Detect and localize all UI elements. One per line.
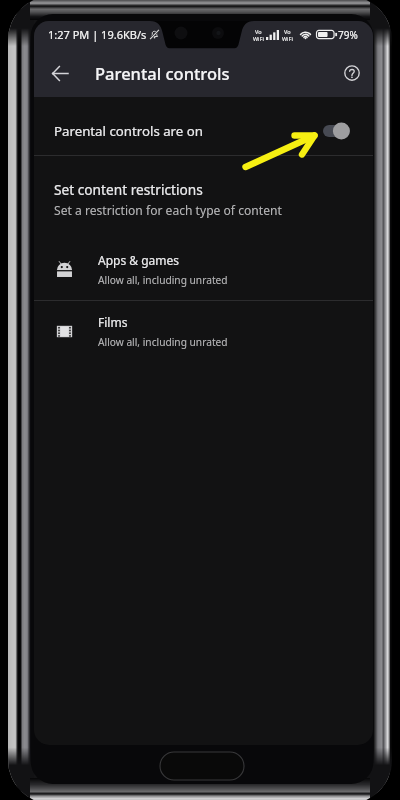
button[interactable]: Parental controls are on bbox=[34, 97, 373, 155]
staticText: Allow all, including unrated bbox=[98, 335, 228, 349]
button[interactable]: Back bbox=[40, 53, 80, 93]
staticText: Vo bbox=[284, 28, 291, 35]
staticText: Parental controls bbox=[95, 62, 230, 84]
staticText: Allow all, including unrated bbox=[98, 273, 228, 287]
staticText: WiFi bbox=[253, 35, 264, 42]
staticText: Films bbox=[98, 314, 128, 330]
button[interactable]: Help bbox=[335, 56, 369, 90]
button[interactable]: Films bbox=[34, 301, 373, 362]
staticText: Parental controls are on bbox=[54, 122, 203, 140]
staticText: 1:27 PM | 19.6KB/s bbox=[48, 27, 147, 42]
staticText: 79% bbox=[338, 28, 358, 42]
staticText: WiFi bbox=[282, 35, 293, 42]
staticText: Vo bbox=[255, 28, 262, 35]
staticText: Set content restrictions bbox=[54, 180, 203, 199]
staticText: Set a restriction for each type of conte… bbox=[54, 202, 282, 218]
button[interactable]: Apps & games bbox=[34, 239, 373, 300]
staticText: Apps & games bbox=[98, 252, 180, 268]
